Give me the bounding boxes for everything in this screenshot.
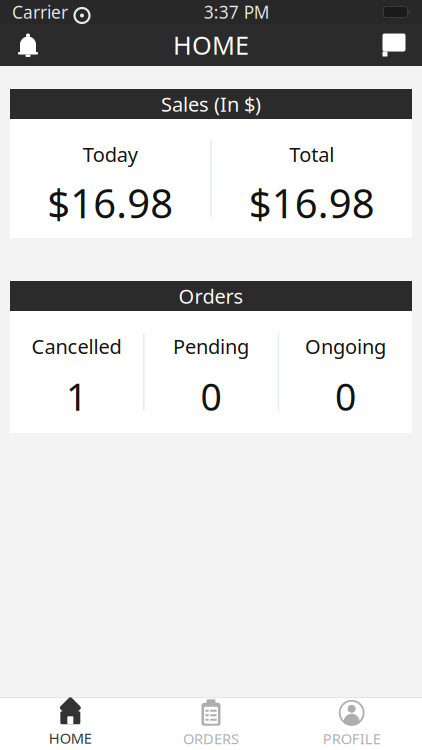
staticText: Sales (In $): [161, 91, 261, 117]
staticText: HOME: [173, 28, 249, 62]
staticText: Cancelled: [32, 333, 122, 360]
button[interactable]: ORDERS: [141, 697, 281, 750]
staticText: 3:37 PM: [204, 0, 270, 23]
staticText: Today: [83, 141, 138, 168]
staticText: $16.98: [249, 176, 375, 229]
staticText: Ongoing: [305, 333, 386, 360]
staticText: $16.98: [47, 176, 173, 229]
button[interactable]: Notifications: [0, 24, 56, 66]
staticText: 0: [335, 371, 356, 421]
staticText: 0: [200, 371, 221, 421]
staticText: ORDERS: [183, 729, 239, 748]
button[interactable]: HOME: [0, 697, 141, 750]
staticText: Carrier: [12, 0, 68, 23]
staticText: 1: [66, 371, 87, 421]
button[interactable]: PROFILE: [281, 697, 422, 750]
staticText: Orders: [178, 283, 243, 309]
staticText: HOME: [49, 728, 92, 748]
button[interactable]: Messages: [366, 24, 422, 66]
staticText: Pending: [173, 333, 249, 360]
staticText: Total: [289, 141, 334, 168]
staticText: PROFILE: [323, 729, 381, 748]
